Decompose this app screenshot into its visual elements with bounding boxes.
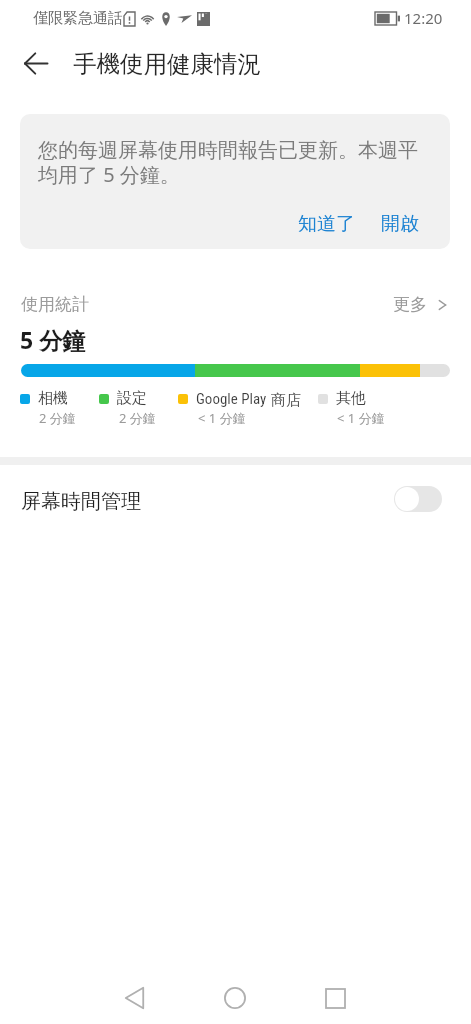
button[interactable]: 使用統計 [0,283,471,325]
staticText: 您的每週屏幕使用時間報告已更新。本週平均用了 5 分鐘。 [38,138,420,188]
staticText: 更多 [393,294,427,315]
staticText: 2 分鐘 [119,409,156,427]
button[interactable]: Back [105,972,163,1024]
staticText: < 1 分鐘 [337,409,385,427]
staticText: < 1 分鐘 [198,409,246,427]
staticText: 手機使用健康情況 [73,49,261,79]
staticText: 屏幕時間管理 [21,489,141,514]
staticText: Google Play [196,390,267,408]
staticText: 使用統計 [21,294,89,315]
button[interactable]: Home [206,972,264,1024]
button[interactable]: Recents [306,972,364,1024]
staticText: 開啟 [381,212,419,236]
staticText: 知道了 [298,212,355,236]
staticText: 12:20 [404,8,443,28]
button[interactable]: 知道了 [288,204,365,244]
staticText: 商店 [267,389,301,409]
button[interactable]: 屏幕時間管理 [0,465,471,543]
button[interactable]: Toggle screen time management [394,486,442,512]
button[interactable]: 開啟 [371,204,429,244]
button[interactable]: Back [12,39,60,87]
staticText: 2 分鐘 [39,409,76,427]
button[interactable]: 您的每週屏幕使用時間報告已更新。本週平均用了 5 分鐘。 [20,114,450,249]
staticText: 5 分鐘 [20,324,86,355]
staticText: 相機 [38,389,68,408]
staticText: 其他 [336,389,366,408]
staticText: 設定 [117,389,147,408]
staticText: 僅限緊急通話 [33,9,123,28]
